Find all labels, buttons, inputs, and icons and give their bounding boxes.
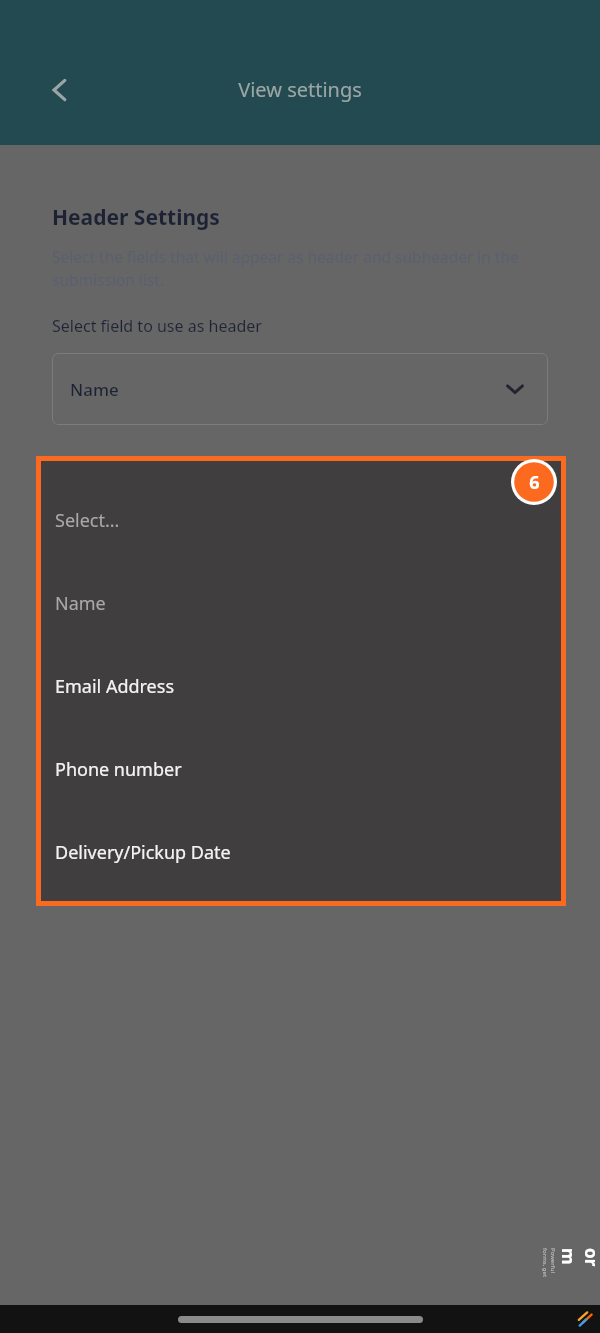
staticText: Name <box>55 591 106 616</box>
staticText: Powerful forms, get it done. <box>540 1248 557 1282</box>
staticText: Phone number <box>55 757 182 782</box>
staticText: Delivery/Pickup Date <box>55 840 231 865</box>
staticText: Select... <box>55 508 120 533</box>
staticText: Jotform <box>557 1248 600 1282</box>
staticText: Email Address <box>55 674 175 699</box>
button[interactable]: Back <box>30 60 90 120</box>
staticText: Select field to use as header <box>52 315 262 337</box>
button[interactable]: Delivery/Pickup Date <box>41 811 561 894</box>
button[interactable]: Name <box>52 353 548 425</box>
staticText: Header Settings <box>52 203 220 232</box>
button[interactable]: Select... <box>41 479 561 562</box>
staticText: 6 <box>529 470 540 495</box>
button[interactable]: Name <box>41 562 561 645</box>
staticText: Name <box>70 378 119 401</box>
button[interactable]: Email Address <box>41 645 561 728</box>
staticText: View settings <box>0 76 600 103</box>
button[interactable]: Phone number <box>41 728 561 811</box>
